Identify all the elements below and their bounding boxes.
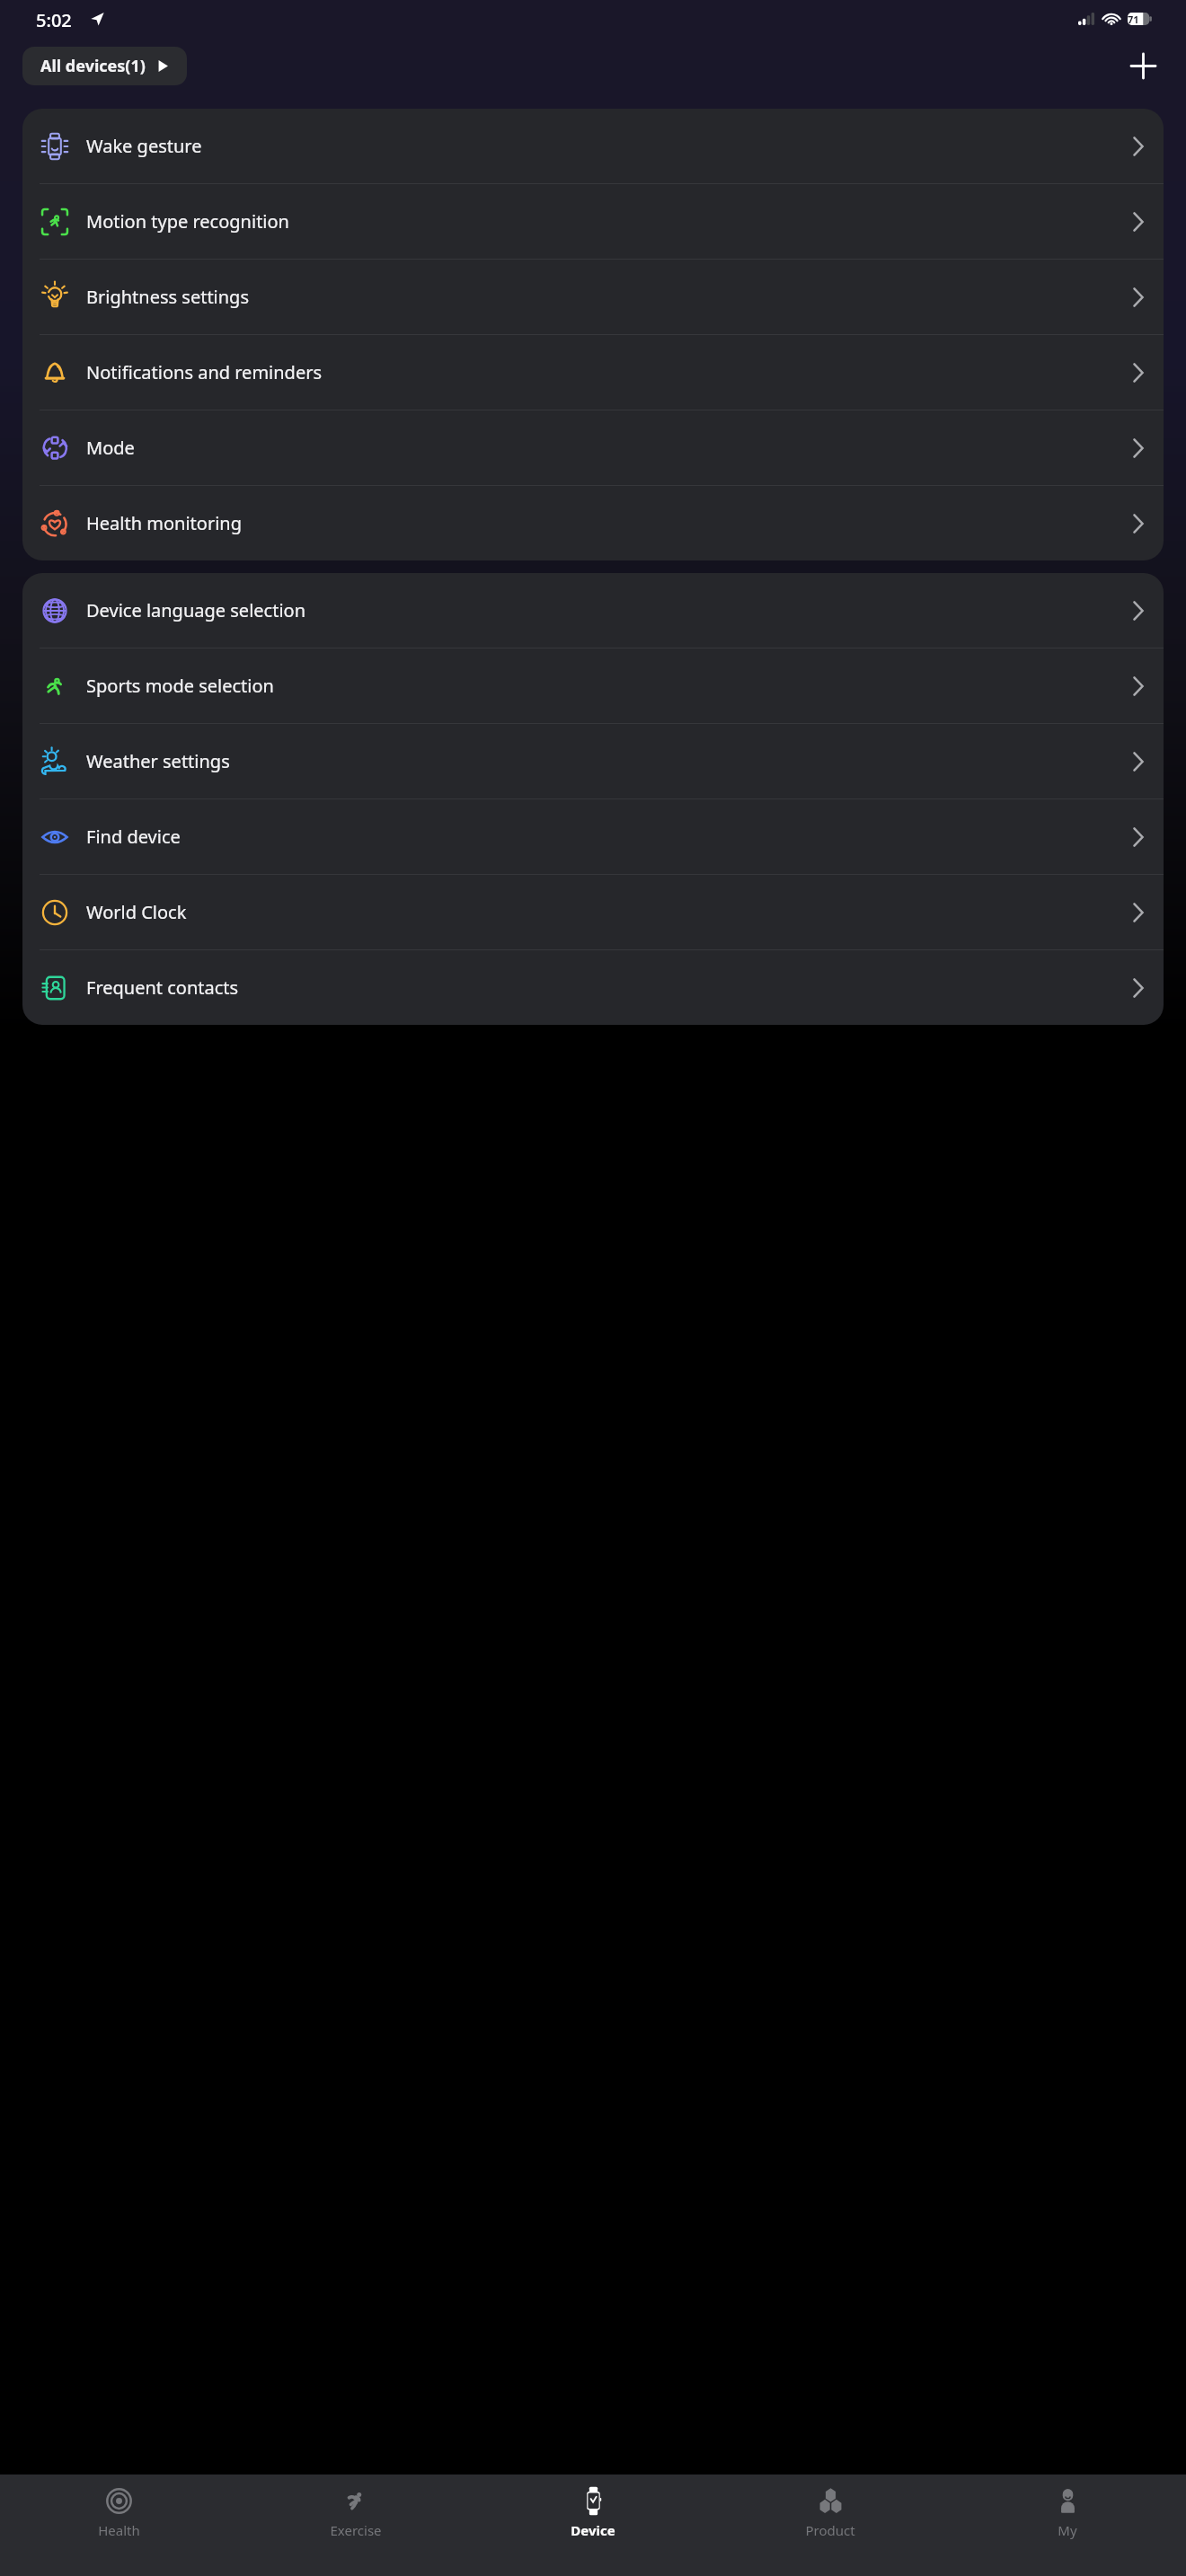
staticText: Motion type recognition bbox=[86, 209, 289, 234]
button[interactable]: Find device bbox=[22, 799, 1164, 874]
staticText: Sports mode selection bbox=[86, 674, 274, 698]
button[interactable]: Weather settings bbox=[22, 724, 1164, 798]
staticText: 71 bbox=[1128, 13, 1139, 26]
button[interactable]: All devices(1) bbox=[22, 47, 187, 85]
staticText: 5:02 bbox=[36, 8, 72, 32]
staticText: Exercise bbox=[330, 2521, 382, 2539]
button[interactable]: Health monitoring bbox=[22, 486, 1164, 560]
button[interactable]: Motion type recognition bbox=[22, 184, 1164, 259]
staticText: Health monitoring bbox=[86, 511, 242, 535]
button[interactable]: My bbox=[949, 2475, 1186, 2576]
button[interactable]: Add device bbox=[1120, 42, 1166, 89]
staticText: Device language selection bbox=[86, 598, 306, 622]
staticText: Brightness settings bbox=[86, 285, 249, 309]
staticText: Notifications and reminders bbox=[86, 360, 323, 384]
staticText: Find device bbox=[86, 825, 181, 849]
staticText: Health bbox=[98, 2521, 140, 2539]
button[interactable]: Device language selection bbox=[22, 573, 1164, 648]
button[interactable]: Health bbox=[0, 2475, 237, 2576]
staticText: Wake gesture bbox=[86, 134, 202, 158]
staticText: Frequent contacts bbox=[86, 975, 239, 1000]
staticText: My bbox=[1058, 2521, 1077, 2539]
button[interactable]: Wake gesture bbox=[22, 109, 1164, 183]
staticText: All devices(1) bbox=[40, 55, 146, 77]
staticText: Product bbox=[805, 2521, 855, 2539]
button[interactable]: Sports mode selection bbox=[22, 648, 1164, 723]
staticText: Mode bbox=[86, 436, 135, 460]
staticText: Weather settings bbox=[86, 749, 230, 773]
button[interactable]: Exercise bbox=[237, 2475, 474, 2576]
button[interactable]: Brightness settings bbox=[22, 260, 1164, 334]
button[interactable]: Frequent contacts bbox=[22, 950, 1164, 1025]
button[interactable]: World Clock bbox=[22, 875, 1164, 949]
button[interactable]: Device bbox=[474, 2475, 712, 2576]
staticText: World Clock bbox=[86, 900, 187, 924]
button[interactable]: Notifications and reminders bbox=[22, 335, 1164, 410]
staticText: Device bbox=[571, 2521, 615, 2539]
button[interactable]: Mode bbox=[22, 410, 1164, 485]
button[interactable]: Product bbox=[712, 2475, 949, 2576]
